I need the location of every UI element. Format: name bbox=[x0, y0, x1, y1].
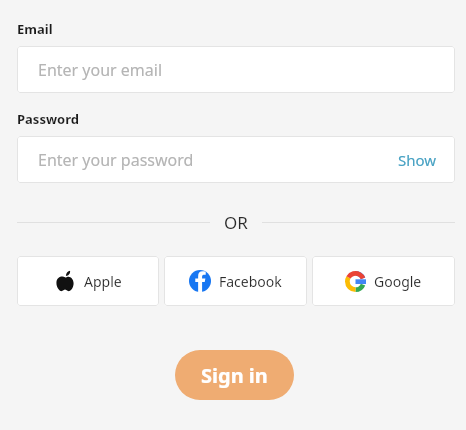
staticText: Show bbox=[398, 150, 437, 170]
staticText: Apple bbox=[84, 272, 122, 291]
staticText: OR bbox=[224, 211, 248, 234]
button[interactable]: Sign in with Apple bbox=[17, 256, 159, 306]
button[interactable]: Show bbox=[396, 146, 439, 174]
staticText: Facebook bbox=[219, 272, 282, 291]
staticText: Enter your email bbox=[38, 59, 439, 81]
other: Sign in with Google bbox=[345, 271, 366, 292]
staticText: Email bbox=[17, 20, 53, 38]
button[interactable]: Enter your email bbox=[17, 46, 455, 93]
button[interactable]: Sign in bbox=[175, 350, 294, 400]
staticText: Sign in bbox=[201, 362, 268, 389]
button[interactable]: Sign in with Facebook bbox=[164, 256, 307, 306]
staticText: Password bbox=[17, 110, 79, 128]
staticText: Google bbox=[374, 272, 422, 291]
button[interactable]: Sign in with Google bbox=[312, 256, 455, 306]
staticText: Enter your password bbox=[38, 149, 396, 171]
button[interactable]: Enter your password bbox=[17, 136, 455, 183]
other: Sign in with Apple bbox=[54, 270, 76, 292]
other: Sign in with Facebook bbox=[189, 270, 211, 292]
